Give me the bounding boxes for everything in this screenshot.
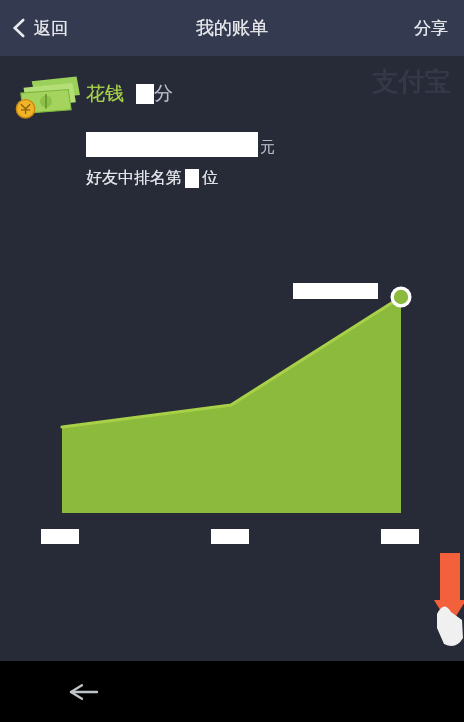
staticText: 花钱: [86, 82, 124, 106]
button[interactable]: 分享: [398, 0, 464, 56]
staticText: 返回: [34, 18, 68, 39]
staticText: 位: [202, 168, 218, 188]
staticText: 我的账单: [196, 17, 268, 40]
staticText: 支付宝: [372, 66, 450, 99]
staticText: 分: [154, 82, 173, 106]
staticText: 元: [260, 138, 275, 157]
staticText: 分享: [414, 18, 448, 39]
staticText: 好友中排名第: [86, 168, 182, 188]
button[interactable]: Back: [58, 666, 110, 718]
button[interactable]: 返回: [0, 0, 82, 56]
